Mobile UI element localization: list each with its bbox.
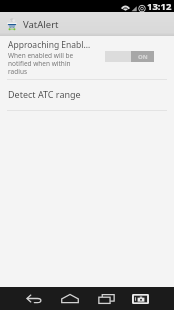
button[interactable]: Home [52, 287, 88, 310]
staticText: 13:12 [147, 0, 172, 12]
staticText: When enabled will be notified when withi… [8, 51, 78, 76]
button[interactable]: ON [105, 51, 154, 62]
button[interactable]: Screenshot [123, 287, 157, 310]
staticText: VatAlert [23, 18, 59, 31]
button[interactable]: Back [8, 287, 60, 310]
button[interactable]: Recent apps [88, 287, 124, 310]
button[interactable]: Approaching Enabled [0, 36, 174, 79]
staticText: Approaching Enabled [8, 39, 92, 51]
staticText: Detect ATC range [8, 88, 81, 100]
button[interactable]: Detect ATC range [0, 80, 174, 110]
staticText: ON [138, 53, 148, 61]
